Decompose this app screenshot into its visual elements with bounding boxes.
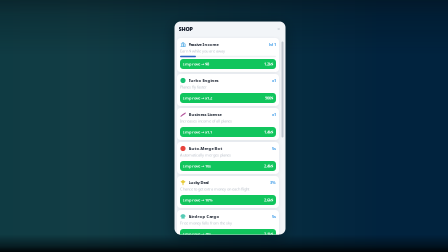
button[interactable]: Improve → x1.1: [180, 127, 276, 137]
staticText: Increases income of all planes: [180, 118, 232, 124]
staticText: 2.4k$: [264, 163, 273, 169]
staticText: ✕: [277, 27, 280, 31]
staticText: Earn $ while you are away: [180, 48, 225, 54]
button[interactable]: Improve → 20s: [180, 229, 276, 239]
button[interactable]: Improve → $8: [180, 59, 276, 69]
staticText: Planes fly faster: [180, 84, 207, 90]
staticText: Business License: [188, 112, 221, 117]
staticText: Improve → 10s: [183, 163, 211, 169]
staticText: x1: [272, 78, 276, 83]
staticText: 1.4k$: [264, 129, 273, 135]
staticText: x1: [272, 112, 276, 117]
staticText: 2.6k$: [264, 197, 273, 203]
staticText: Improve → x1.1: [183, 129, 212, 135]
staticText: 5s: [272, 146, 276, 151]
staticText: lvl 1: [269, 42, 276, 47]
staticText: 3.1k$: [264, 231, 273, 237]
staticText: 3%: [270, 180, 276, 185]
staticText: Chance to get extra money on each flight: [180, 186, 249, 192]
staticText: 900$: [265, 95, 273, 101]
staticText: Airdrop Cargo: [188, 214, 219, 219]
staticText: Improve → 10%: [183, 197, 213, 203]
staticText: Lucky Deal: [188, 180, 208, 185]
staticText: Passive Income: [188, 42, 218, 47]
staticText: Improve → 20s: [183, 231, 211, 237]
button[interactable]: Improve → x1.2: [180, 93, 276, 103]
staticText: Turbo Engines: [188, 78, 218, 83]
staticText: Automatically merges planes: [180, 152, 231, 158]
staticText: Auto-Merge Bot: [188, 146, 222, 151]
button[interactable]: Close: [275, 26, 281, 32]
button[interactable]: Improve → 10%: [180, 195, 276, 205]
staticText: SHOP: [178, 25, 192, 33]
staticText: 5s: [272, 214, 276, 219]
staticText: Free money falls from the sky: [180, 220, 232, 226]
staticText: Improve → x1.2: [183, 95, 212, 101]
staticText: 1.2k$: [264, 61, 273, 67]
staticText: Improve → $8: [183, 61, 209, 67]
button[interactable]: Improve → 10s: [180, 161, 276, 171]
